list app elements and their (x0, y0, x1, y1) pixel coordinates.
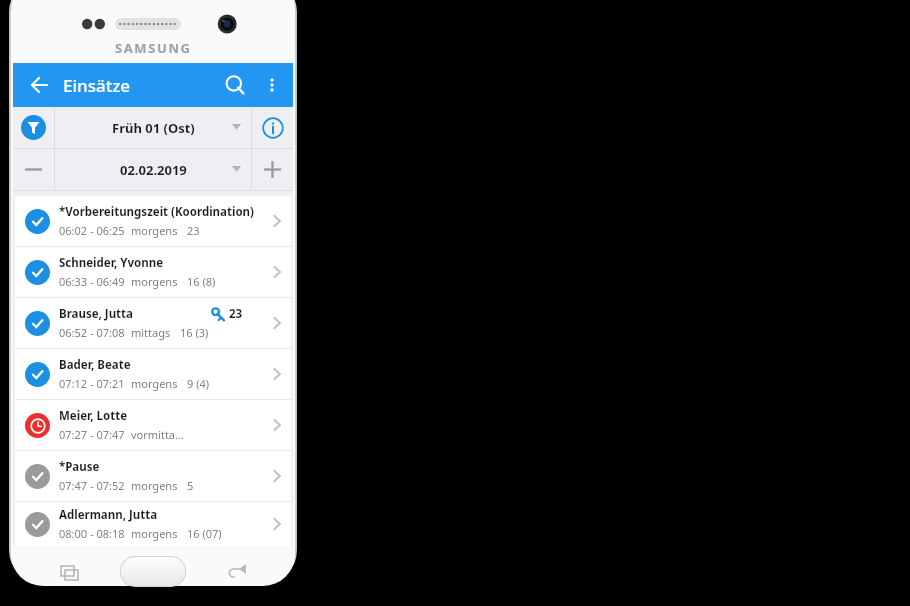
button[interactable]: Info (252, 107, 293, 148)
staticText: 06:52 - 07:08 (59, 325, 125, 340)
staticText: 16 (8) (187, 274, 216, 289)
staticText: morgens (131, 274, 178, 289)
staticText: 23 (229, 306, 243, 322)
staticText: SAMSUNG (115, 39, 192, 57)
button[interactable]: More options (255, 68, 289, 102)
staticText: 07:12 - 07:21 (59, 376, 125, 391)
staticText: 07:47 - 07:52 (59, 478, 125, 493)
button[interactable]: Bader, Beate (15, 349, 291, 399)
button[interactable]: *Vorbereitungszeit (Koordination) (15, 196, 291, 246)
button[interactable]: Back (21, 67, 57, 103)
staticText: Einsätze (63, 74, 215, 97)
staticText: 06:02 - 06:25 (59, 223, 125, 238)
staticText: 16 (07) (187, 526, 222, 541)
staticText: Adlermann, Jutta (59, 507, 158, 523)
button[interactable]: Filter (13, 107, 54, 148)
staticText: morgens (131, 376, 178, 391)
staticText: 08:00 - 08:18 (59, 526, 125, 541)
staticText: morgens (131, 478, 178, 493)
button[interactable]: Adlermann, Jutta (15, 502, 291, 546)
staticText: morgens (131, 223, 178, 238)
button[interactable]: Previous day (13, 149, 54, 190)
staticText: 06:33 - 06:49 (59, 274, 125, 289)
staticText: 02.02.2019 (120, 161, 187, 179)
staticText: mittags (131, 325, 171, 340)
button[interactable]: Search (215, 65, 255, 105)
button[interactable]: Meier, Lotte (15, 400, 291, 450)
button[interactable]: Next day (252, 149, 293, 190)
staticText: morgens (131, 526, 178, 541)
staticText: Schneider, Yvonne (59, 255, 163, 271)
staticText: vormitta… (131, 427, 184, 442)
staticText: *Pause (59, 459, 100, 475)
staticText: 07:27 - 07:47 (59, 427, 125, 442)
staticText: *Vorbereitungszeit (Koordination) (59, 204, 254, 220)
button[interactable]: Schneider, Yvonne (15, 247, 291, 297)
staticText: 5 (187, 478, 194, 493)
button[interactable]: Früh 01 (Ost) (55, 107, 251, 148)
staticText: Brause, Jutta (59, 306, 133, 322)
button[interactable]: Recents (55, 559, 81, 585)
button[interactable]: *Pause (15, 451, 291, 501)
staticText: 9 (4) (187, 376, 210, 391)
button[interactable]: Brause, Jutta (15, 298, 291, 348)
staticText: 16 (3) (180, 325, 209, 340)
button[interactable]: Home (121, 557, 185, 586)
staticText: Meier, Lotte (59, 408, 128, 424)
staticText: 23 (187, 223, 200, 238)
button[interactable]: 02.02.2019 (55, 149, 251, 190)
button[interactable]: Back (225, 559, 251, 585)
staticText: Bader, Beate (59, 357, 131, 373)
staticText: Früh 01 (Ost) (112, 119, 195, 137)
